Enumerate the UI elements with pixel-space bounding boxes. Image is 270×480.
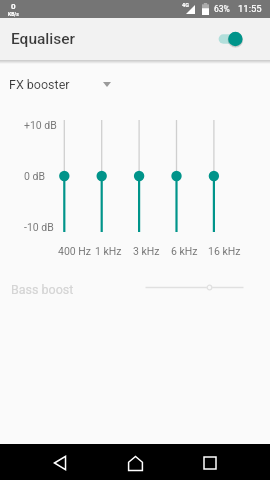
- staticText: 4G: [182, 2, 189, 8]
- staticText: +10 dB: [24, 119, 57, 131]
- staticText: Equaliser: [11, 30, 76, 48]
- staticText: 11:55: [238, 3, 262, 14]
- button[interactable]: Toggle equaliser: [214, 27, 244, 51]
- button[interactable]: Recents: [195, 444, 225, 480]
- button[interactable]: Back: [45, 444, 75, 480]
- staticText: 3 kHz: [133, 245, 160, 257]
- staticText: KB/s: [8, 11, 19, 17]
- staticText: 0: [11, 2, 16, 11]
- staticText: FX booster: [9, 77, 70, 92]
- staticText: 16 kHz: [208, 245, 241, 257]
- staticText: -10 dB: [24, 221, 54, 233]
- staticText: 400 Hz: [58, 245, 92, 257]
- staticText: 6 kHz: [171, 245, 198, 257]
- staticText: 0 dB: [24, 170, 45, 182]
- button[interactable]: Home: [120, 444, 150, 480]
- staticText: 63%: [214, 4, 230, 14]
- staticText: 1 kHz: [95, 245, 122, 257]
- staticText: Bass boost: [11, 282, 74, 297]
- button[interactable]: FX booster: [4, 70, 120, 98]
